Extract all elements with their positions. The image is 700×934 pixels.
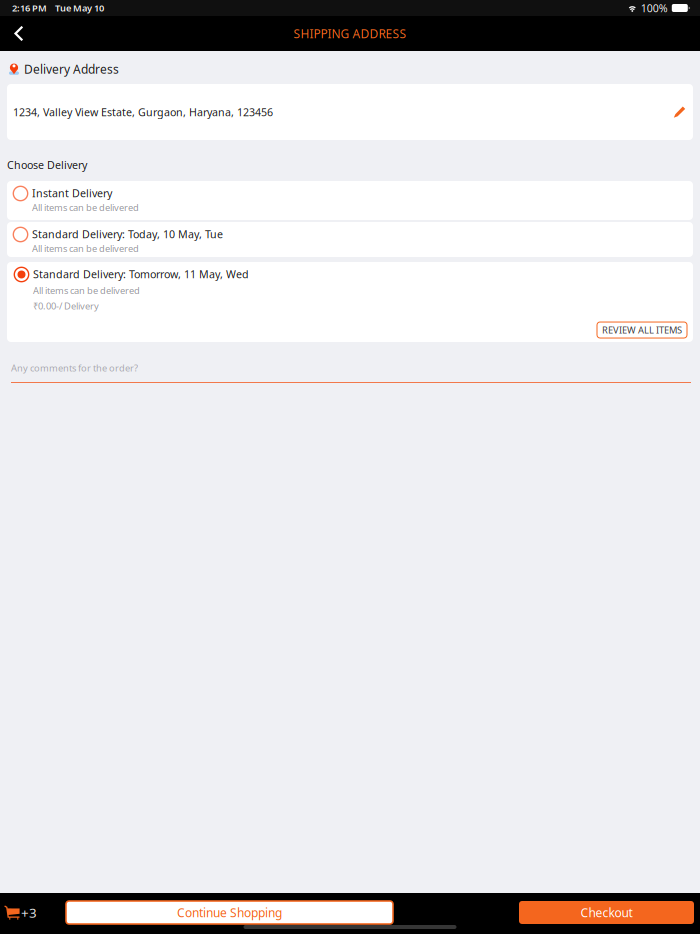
staticText: 2:16 PM (12, 2, 47, 14)
button[interactable]: Checkout (519, 901, 694, 924)
staticText: Any comments for the order? (11, 362, 138, 374)
staticText: REVIEW ALL ITEMS (602, 324, 682, 336)
button[interactable]: Continue Shopping (66, 901, 393, 924)
staticText: All items can be delivered (32, 242, 139, 255)
staticText: Standard Delivery: Today, 10 May, Tue (32, 227, 223, 241)
button[interactable]: Standard Delivery: Today, 10 May, Tue (7, 222, 693, 257)
staticText: ₹0.00-/ Delivery (33, 300, 99, 312)
button[interactable]: Back (0, 16, 36, 51)
staticText: 1234, Valley View Estate, Gurgaon, Harya… (13, 105, 273, 119)
staticText: Standard Delivery: Tomorrow, 11 May, Wed (33, 267, 249, 281)
button[interactable]: REVIEW ALL ITEMS (597, 322, 687, 338)
button[interactable]: 1234, Valley View Estate, Gurgaon, Harya… (7, 84, 693, 140)
staticText: 100% (641, 1, 668, 15)
staticText: Tue May 10 (55, 2, 104, 14)
staticText: Delivery Address (24, 61, 119, 77)
staticText: Continue Shopping (177, 904, 282, 920)
staticText: SHIPPING ADDRESS (293, 25, 406, 41)
staticText: Choose Delivery (7, 158, 87, 172)
button[interactable]: Instant Delivery (7, 181, 693, 220)
staticText: All items can be delivered (33, 284, 140, 297)
button[interactable]: Cart, 3 items (0, 901, 66, 924)
staticText: Instant Delivery (32, 186, 112, 200)
staticText: Checkout (580, 904, 632, 920)
staticText: +3 (21, 904, 37, 921)
staticText: All items can be delivered (32, 201, 139, 214)
